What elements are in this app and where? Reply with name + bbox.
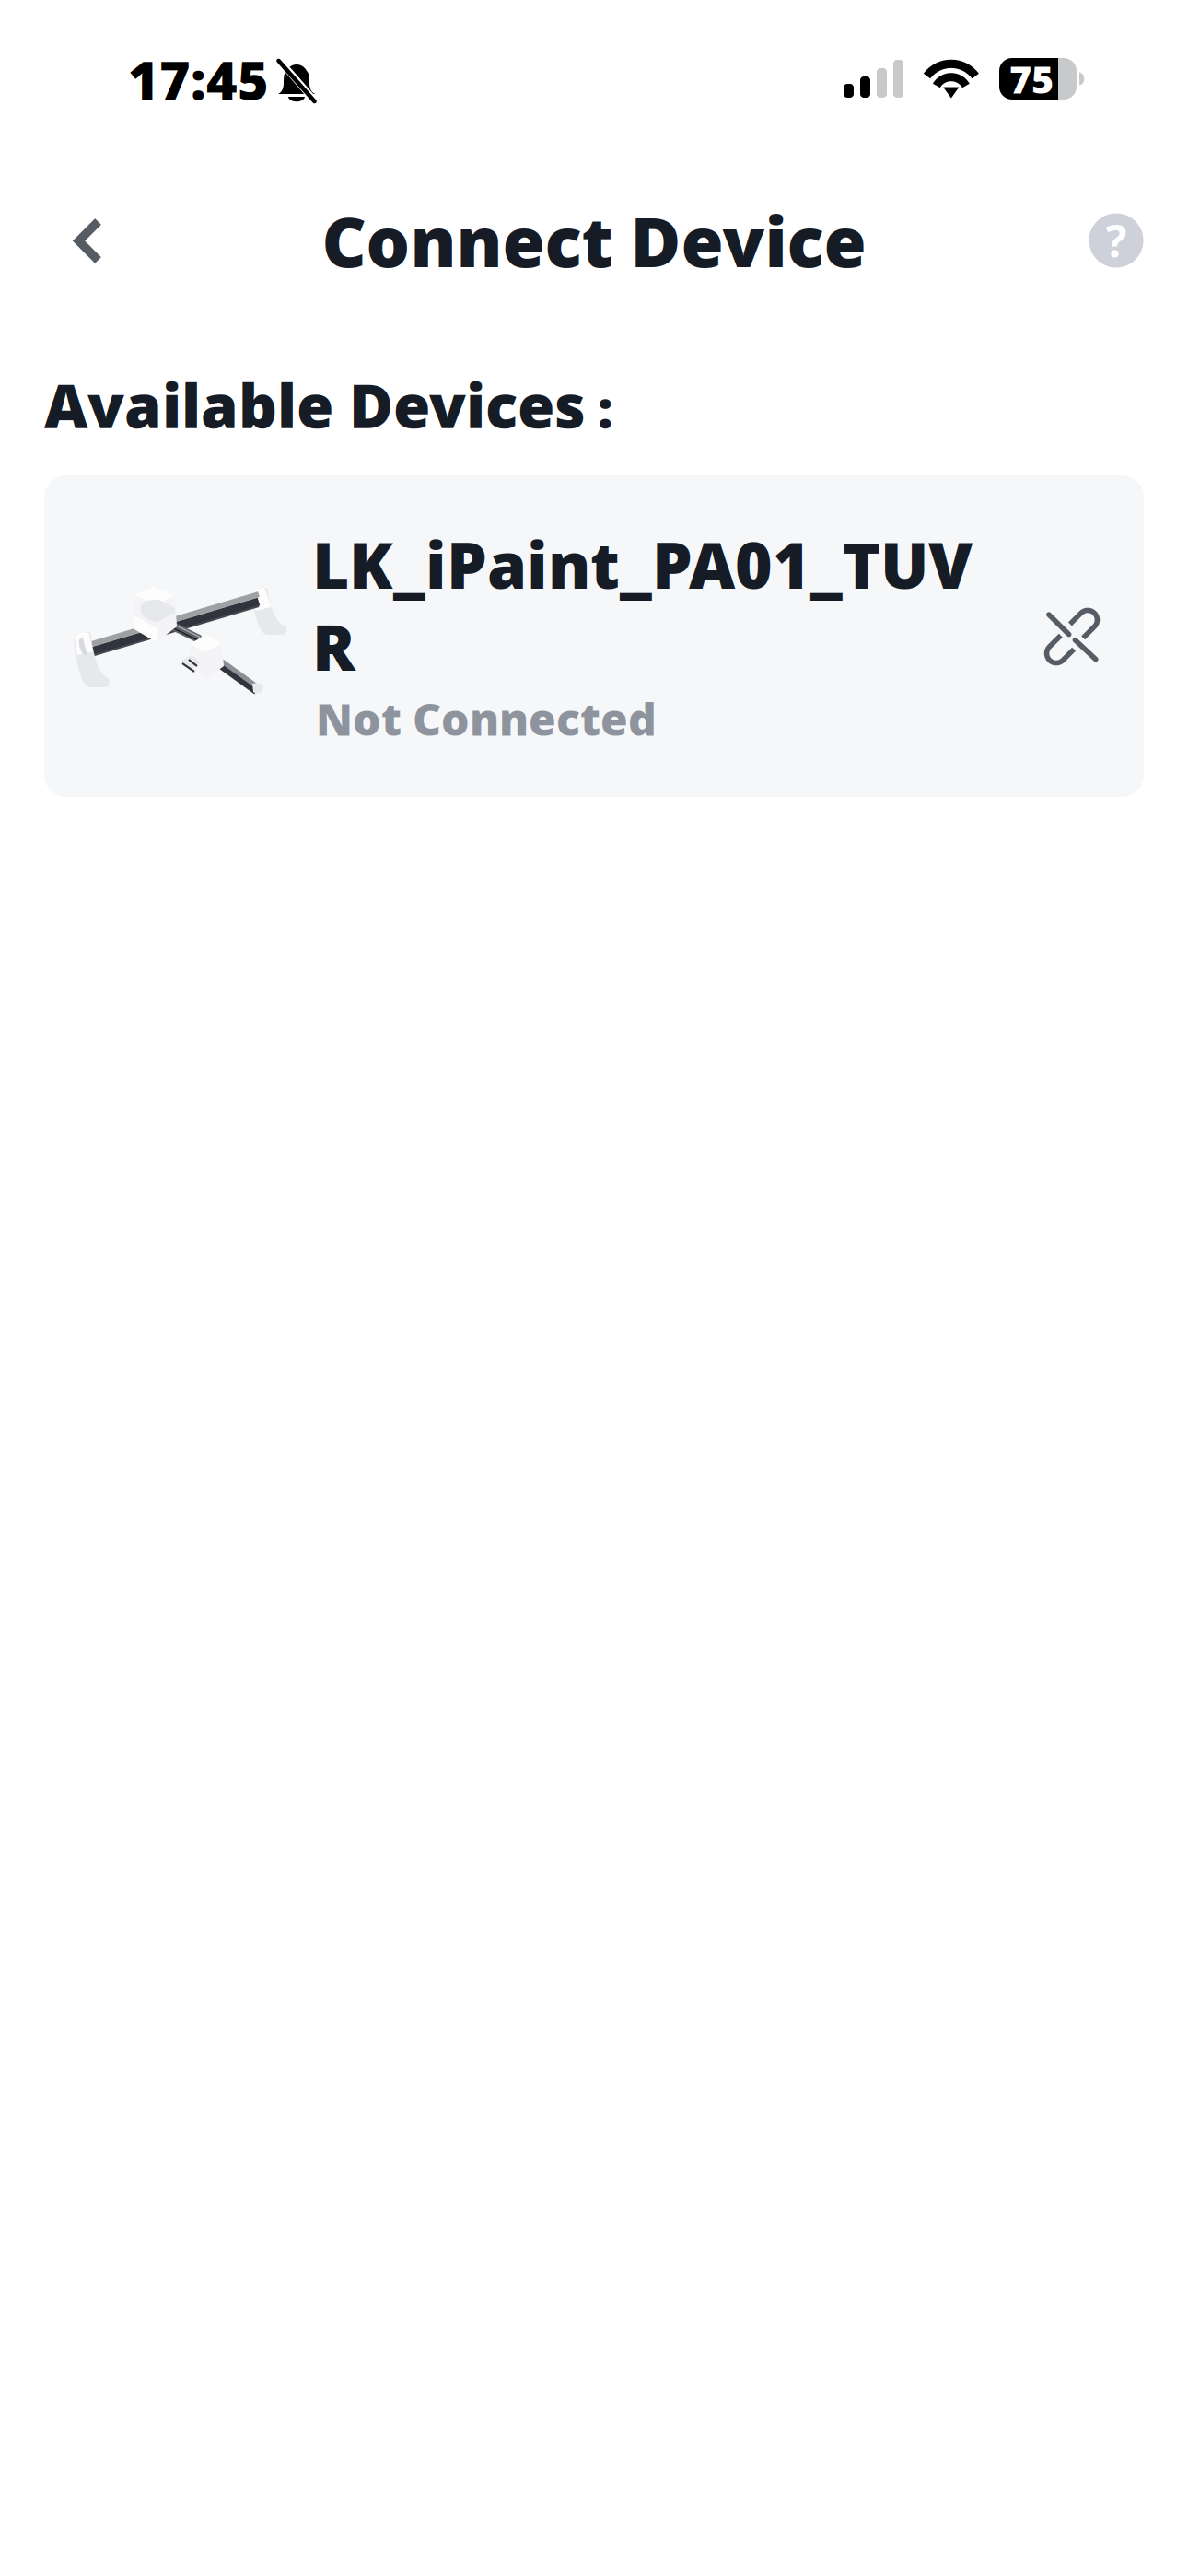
staticText: : (598, 373, 613, 443)
staticText: 75 (1009, 54, 1054, 104)
button[interactable]: Help (1072, 196, 1160, 285)
staticText: Available Devices (44, 365, 586, 445)
button[interactable]: LK_iPaint_PA01_TUV (44, 475, 1144, 797)
staticText: 17:45 (128, 44, 269, 114)
staticText: Not Connected (316, 689, 657, 748)
staticText: LK_iPaint_PA01_TUV (312, 521, 973, 606)
staticText: Connect Device (322, 195, 866, 286)
staticText: ? (1106, 211, 1127, 270)
staticText: R (312, 603, 355, 688)
button[interactable]: Back (43, 197, 132, 286)
